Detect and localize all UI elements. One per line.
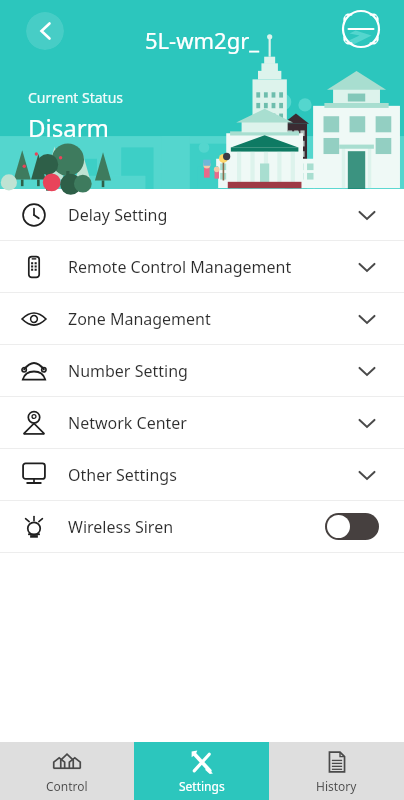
staticText: Other Settings <box>68 464 177 486</box>
button[interactable]: Other Settings <box>0 449 404 500</box>
staticText: Remote Control Management <box>68 256 292 278</box>
button[interactable]: Expand Other Settings <box>356 464 378 486</box>
staticText: Disarm <box>28 111 110 144</box>
staticText: Current Status <box>28 88 124 107</box>
button[interactable]: Control <box>0 742 134 800</box>
staticText: Control <box>46 778 88 794</box>
staticText: Zone Management <box>68 308 211 330</box>
button[interactable]: Back <box>26 12 64 50</box>
staticText: Network Center <box>68 412 187 434</box>
button[interactable]: Expand Number Setting <box>356 360 378 382</box>
staticText: Settings <box>179 778 225 794</box>
staticText: History <box>316 778 357 794</box>
button[interactable]: Expand Network Center <box>356 412 378 434</box>
button[interactable]: Expand Zone Management <box>356 308 378 330</box>
button[interactable]: Scan QR code <box>340 8 382 50</box>
button[interactable]: Expand Remote Control Management <box>356 256 378 278</box>
button[interactable]: Expand Delay Setting <box>356 204 378 226</box>
button[interactable]: Remote Control Management <box>0 241 404 292</box>
button[interactable]: Wireless Siren <box>0 501 404 552</box>
button[interactable]: Zone Management <box>0 293 404 344</box>
button[interactable]: History <box>269 742 404 800</box>
button[interactable]: Delay Setting <box>0 189 404 240</box>
staticText: Number Setting <box>68 360 188 382</box>
button[interactable]: Wireless Siren toggle <box>325 513 379 540</box>
staticText: 5L-wm2gr_ <box>0 25 404 55</box>
button[interactable]: Settings <box>134 742 269 800</box>
staticText: Delay Setting <box>68 204 168 226</box>
button[interactable]: Network Center <box>0 397 404 448</box>
staticText: Wireless Siren <box>68 516 174 538</box>
button[interactable]: Number Setting <box>0 345 404 396</box>
